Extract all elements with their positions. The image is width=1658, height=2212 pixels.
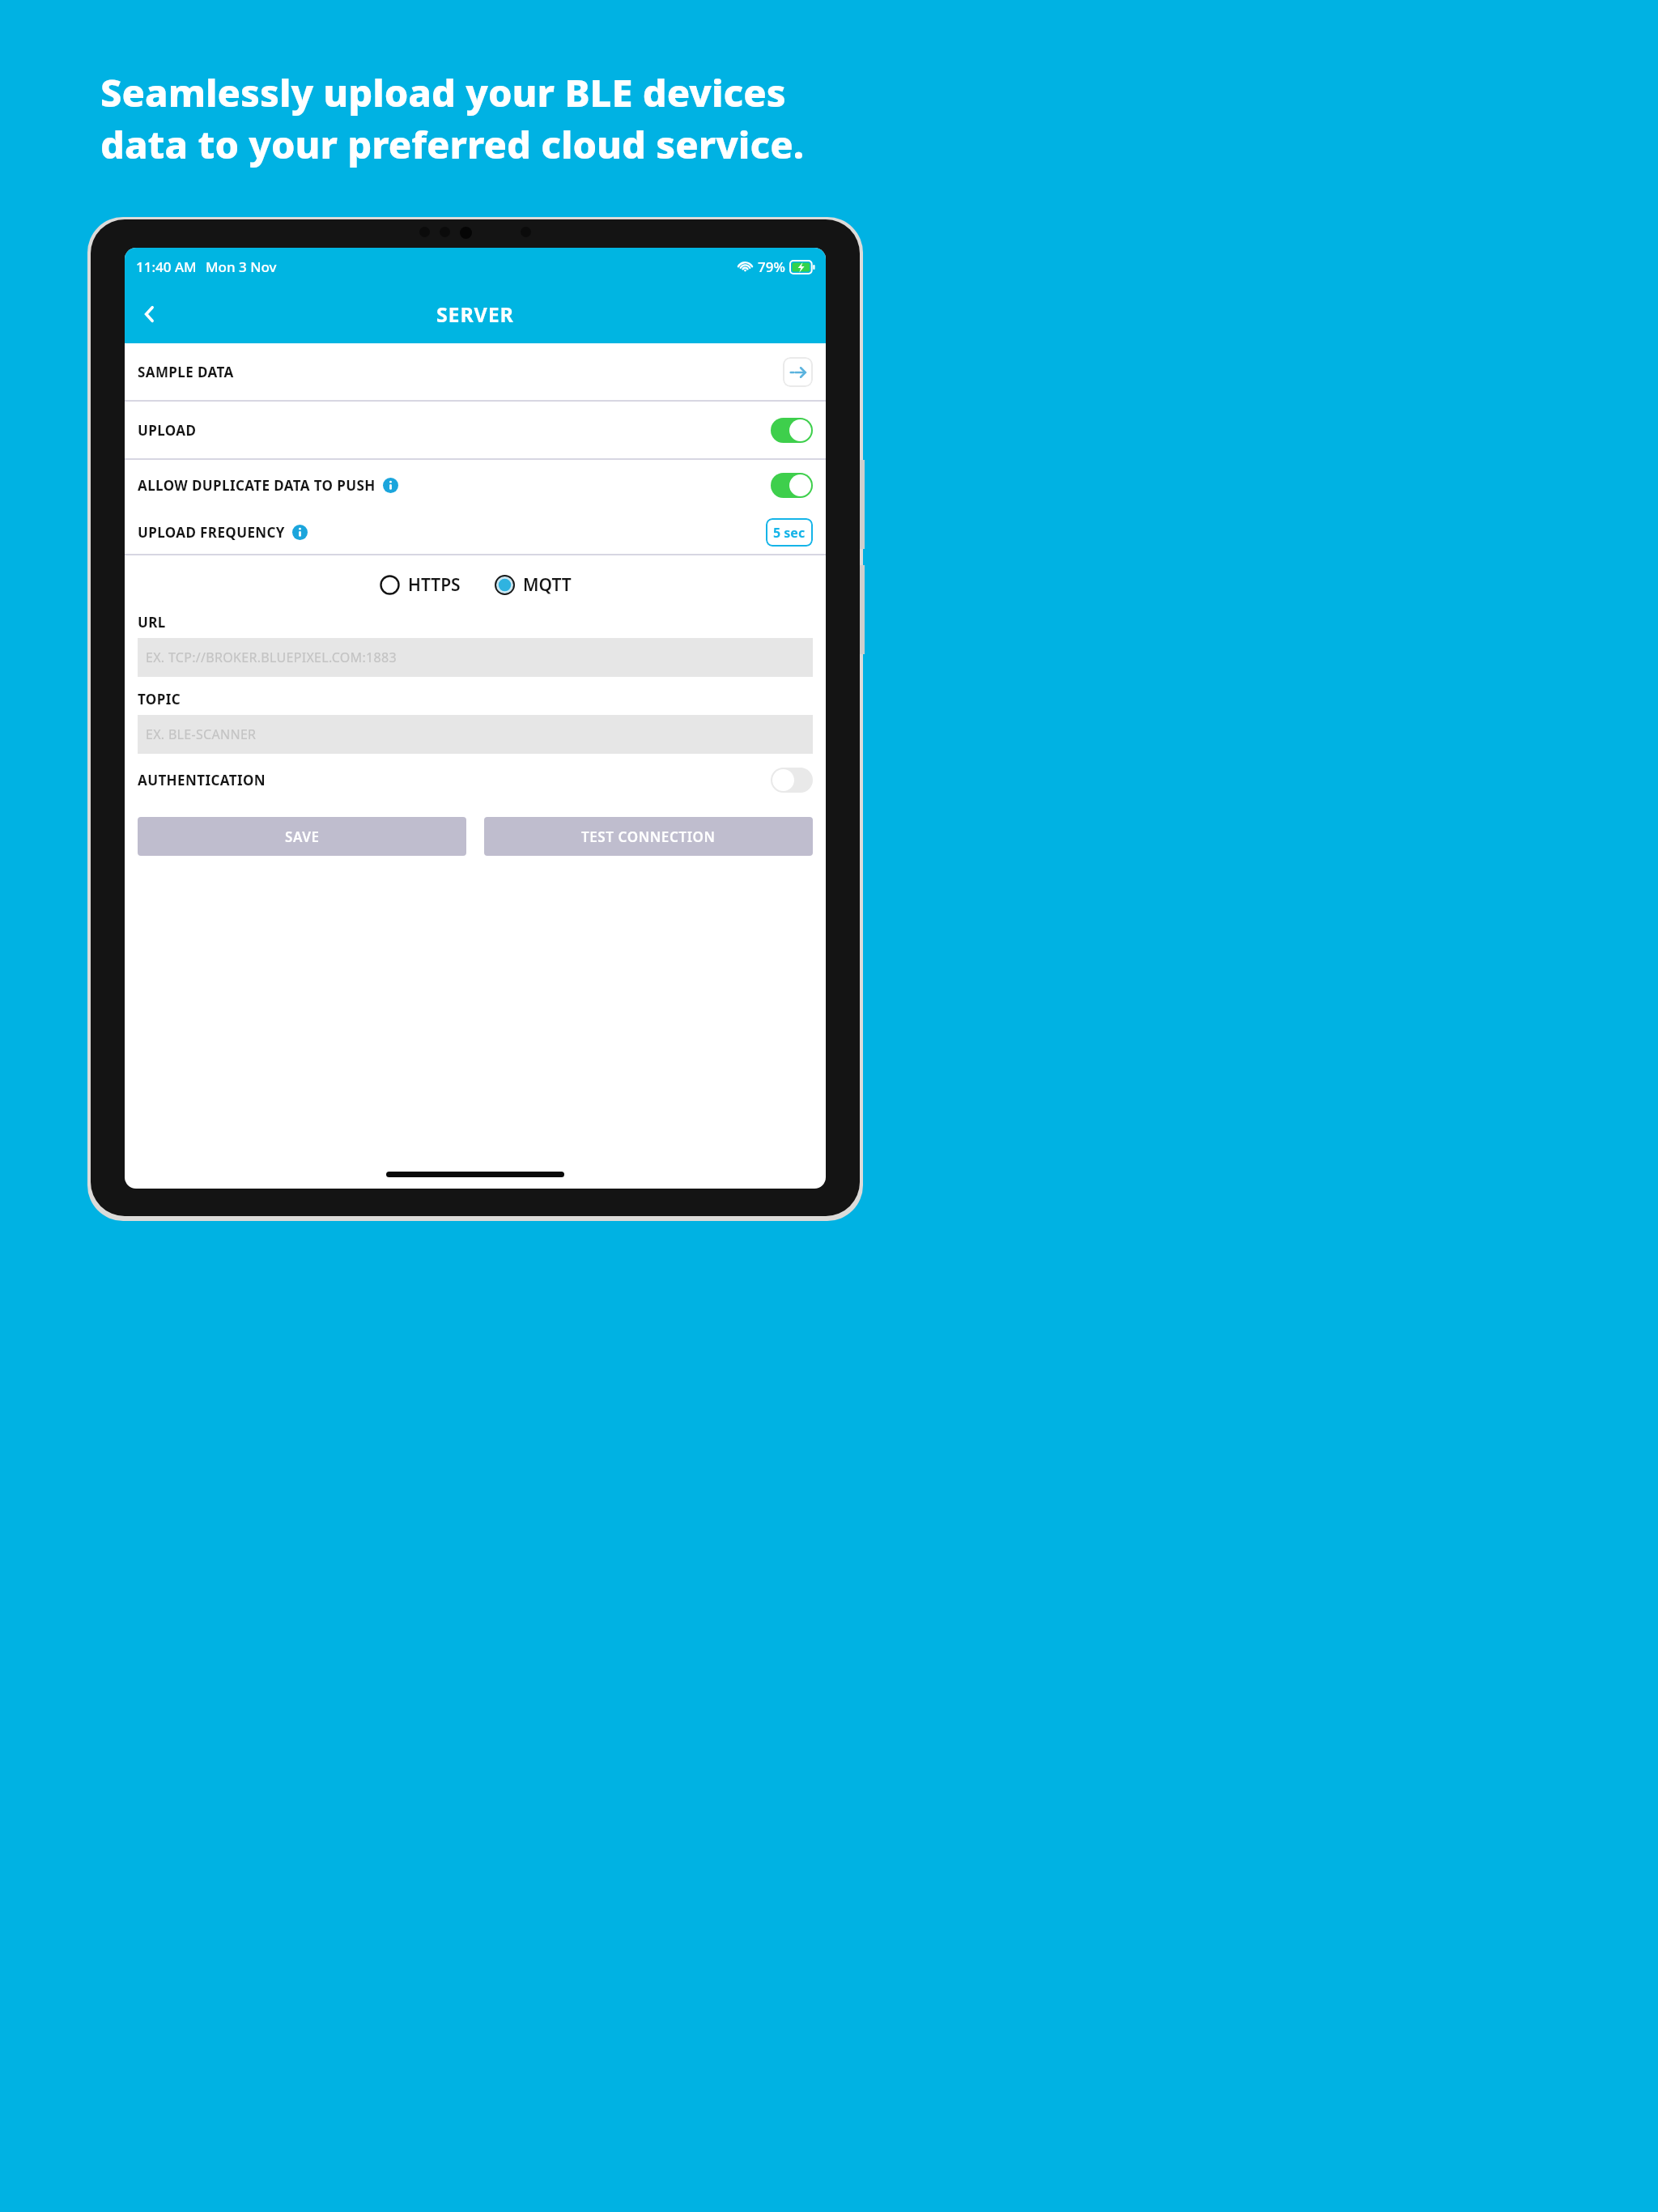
- button[interactable]: Toggle on: [771, 418, 813, 443]
- staticText: Mon 3 Nov: [206, 257, 277, 276]
- staticText: TOPIC: [138, 690, 181, 708]
- button[interactable]: TEST CONNECTION: [484, 817, 813, 856]
- staticText: SAVE: [285, 827, 320, 846]
- button[interactable]: UPLOAD: [125, 402, 826, 458]
- staticText: SERVER: [436, 300, 514, 328]
- button[interactable]: ALLOW DUPLICATE DATA TO PUSH: [125, 460, 826, 510]
- button[interactable]: AUTHENTICATION: [125, 754, 826, 806]
- staticText: EX. BLE-SCANNER: [146, 725, 257, 743]
- staticText: MQTT: [523, 573, 572, 597]
- button[interactable]: SAMPLE DATA: [125, 343, 826, 400]
- staticText: data to your preferred cloud service.: [100, 118, 805, 170]
- button[interactable]: Toggle on: [771, 473, 813, 498]
- staticText: TEST CONNECTION: [581, 827, 716, 846]
- button[interactable]: 5 sec: [766, 518, 813, 547]
- staticText: ALLOW DUPLICATE DATA TO PUSH: [138, 476, 376, 495]
- button[interactable]: Back: [125, 285, 175, 343]
- staticText: EX. TCP://BROKER.BLUEPIXEL.COM:1883: [146, 649, 397, 666]
- button[interactable]: Toggle off: [771, 768, 813, 793]
- button[interactable]: Open sample data: [783, 357, 813, 387]
- staticText: SAMPLE DATA: [138, 363, 234, 381]
- staticText: UPLOAD FREQUENCY: [138, 523, 285, 542]
- staticText: AUTHENTICATION: [138, 771, 266, 789]
- button[interactable]: HTTPS: [375, 568, 466, 602]
- staticText: HTTPS: [408, 573, 461, 597]
- button[interactable]: MQTT: [490, 568, 576, 602]
- staticText: URL: [138, 613, 166, 632]
- staticText: 79%: [758, 257, 785, 276]
- button[interactable]: EX. TCP://BROKER.BLUEPIXEL.COM:1883: [138, 638, 813, 677]
- staticText: Seamlessly upload your BLE devices: [100, 66, 786, 118]
- staticText: UPLOAD: [138, 421, 197, 440]
- button[interactable]: SAVE: [138, 817, 466, 856]
- staticText: 11:40 AM: [136, 257, 197, 276]
- button[interactable]: EX. BLE-SCANNER: [138, 715, 813, 754]
- button[interactable]: UPLOAD FREQUENCY: [125, 510, 826, 554]
- staticText: 5 sec: [773, 524, 806, 542]
